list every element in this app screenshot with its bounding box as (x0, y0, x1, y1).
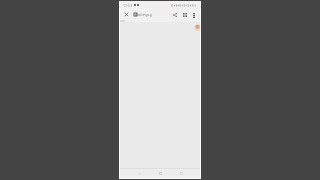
button[interactable]: Home (150, 169, 171, 178)
button[interactable]: Close (123, 9, 130, 20)
staticText: 17:53 (123, 3, 133, 8)
staticText: settings.g (137, 13, 152, 17)
button[interactable]: More options (190, 11, 198, 19)
button[interactable]: Share (171, 11, 179, 19)
button[interactable]: Recents (171, 169, 192, 178)
button[interactable]: Open in app (181, 11, 189, 19)
